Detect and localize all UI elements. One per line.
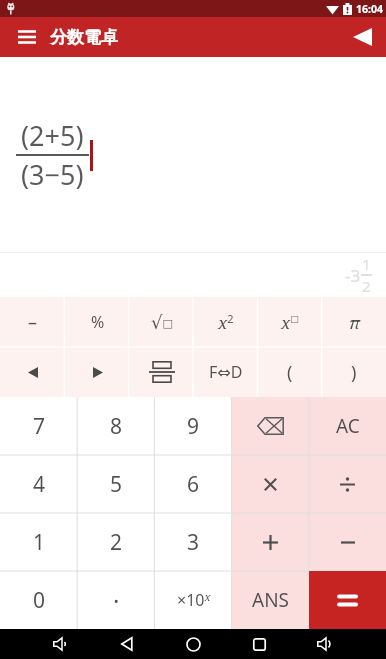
button[interactable]: ×10x xyxy=(155,571,232,629)
button[interactable]: 8 xyxy=(78,397,155,455)
button[interactable]: ) xyxy=(322,347,386,397)
button[interactable] xyxy=(309,513,386,571)
staticText: 4 xyxy=(33,470,46,499)
button[interactable]: 4 xyxy=(0,455,78,513)
staticText: 分数電卓 xyxy=(50,27,118,48)
staticText: 5 xyxy=(110,470,123,499)
staticText: 8 xyxy=(110,412,123,441)
button[interactable] xyxy=(160,629,226,659)
staticText: 6 xyxy=(187,470,200,499)
staticText: 1 xyxy=(33,528,46,557)
button[interactable]: x□ xyxy=(258,297,322,347)
button[interactable] xyxy=(309,571,386,629)
button[interactable]: 0 xyxy=(0,571,78,629)
button[interactable]: 5 xyxy=(78,455,155,513)
button[interactable] xyxy=(0,347,65,397)
button[interactable] xyxy=(232,397,309,455)
staticText: √□ xyxy=(151,312,173,333)
button[interactable]: · xyxy=(78,571,155,629)
staticText: (3−5) xyxy=(21,156,84,193)
staticText: 3 xyxy=(187,528,200,557)
button[interactable] xyxy=(65,347,130,397)
button[interactable] xyxy=(94,629,160,659)
button[interactable]: ( xyxy=(258,347,322,397)
button[interactable] xyxy=(130,347,194,397)
staticText: AC xyxy=(336,413,360,439)
staticText: 9 xyxy=(187,412,200,441)
button[interactable]: √□ xyxy=(130,297,194,347)
staticText: ANS xyxy=(252,587,290,613)
button[interactable] xyxy=(15,25,39,49)
staticText: x□ xyxy=(281,311,299,334)
button[interactable]: F⇔D xyxy=(194,347,258,397)
button[interactable]: 2 xyxy=(78,513,155,571)
button[interactable] xyxy=(292,629,358,659)
staticText: ) xyxy=(351,360,357,385)
staticText: x2 xyxy=(218,311,234,334)
staticText: 16:04 xyxy=(356,2,383,16)
button[interactable]: – xyxy=(0,297,65,347)
button[interactable] xyxy=(232,455,309,513)
staticText: ×10x xyxy=(177,589,211,611)
staticText: 1 xyxy=(362,254,371,274)
staticText: 0 xyxy=(33,586,46,615)
staticText: 2 xyxy=(362,276,371,296)
button[interactable] xyxy=(28,629,94,659)
staticText: % xyxy=(91,311,105,333)
staticText: 2 xyxy=(110,528,123,557)
staticText: 7 xyxy=(33,412,46,441)
button[interactable]: ANS xyxy=(232,571,309,629)
staticText: – xyxy=(28,310,37,335)
staticText: -3 xyxy=(345,264,361,287)
button[interactable]: % xyxy=(65,297,130,347)
button[interactable]: 6 xyxy=(155,455,232,513)
button[interactable]: AC xyxy=(309,397,386,455)
staticText: · xyxy=(113,584,120,617)
button[interactable] xyxy=(309,455,386,513)
button[interactable]: 7 xyxy=(0,397,78,455)
button[interactable] xyxy=(349,24,375,50)
button[interactable]: x2 xyxy=(194,297,258,347)
staticText: F⇔D xyxy=(209,361,243,383)
button[interactable] xyxy=(226,629,292,659)
button[interactable]: 9 xyxy=(155,397,232,455)
button[interactable]: 3 xyxy=(155,513,232,571)
button[interactable]: π xyxy=(322,297,386,347)
button[interactable]: 1 xyxy=(0,513,78,571)
staticText: ( xyxy=(287,360,293,385)
button[interactable] xyxy=(232,513,309,571)
staticText: π xyxy=(349,311,360,334)
staticText: (2+5) xyxy=(21,117,84,154)
